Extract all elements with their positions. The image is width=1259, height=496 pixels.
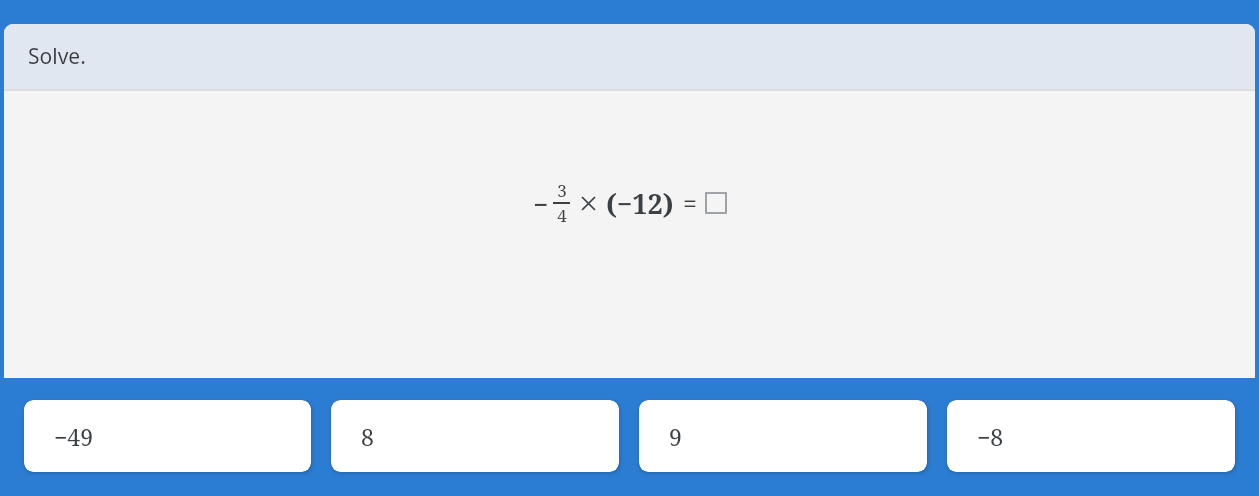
button[interactable]: 8: [331, 400, 619, 472]
staticText: −49: [54, 421, 94, 452]
button[interactable]: −49: [24, 400, 311, 472]
staticText: =: [683, 186, 697, 220]
button[interactable]: −8: [947, 400, 1235, 472]
button[interactable]: 9: [639, 400, 927, 472]
staticText: Solve.: [28, 42, 86, 71]
staticText: 3: [557, 179, 567, 202]
staticText: 8: [361, 421, 374, 452]
staticText: −: [533, 186, 549, 221]
staticText: (−12): [606, 185, 674, 222]
staticText: 9: [669, 421, 682, 452]
staticText: 4: [557, 204, 567, 227]
staticText: −8: [977, 421, 1004, 452]
